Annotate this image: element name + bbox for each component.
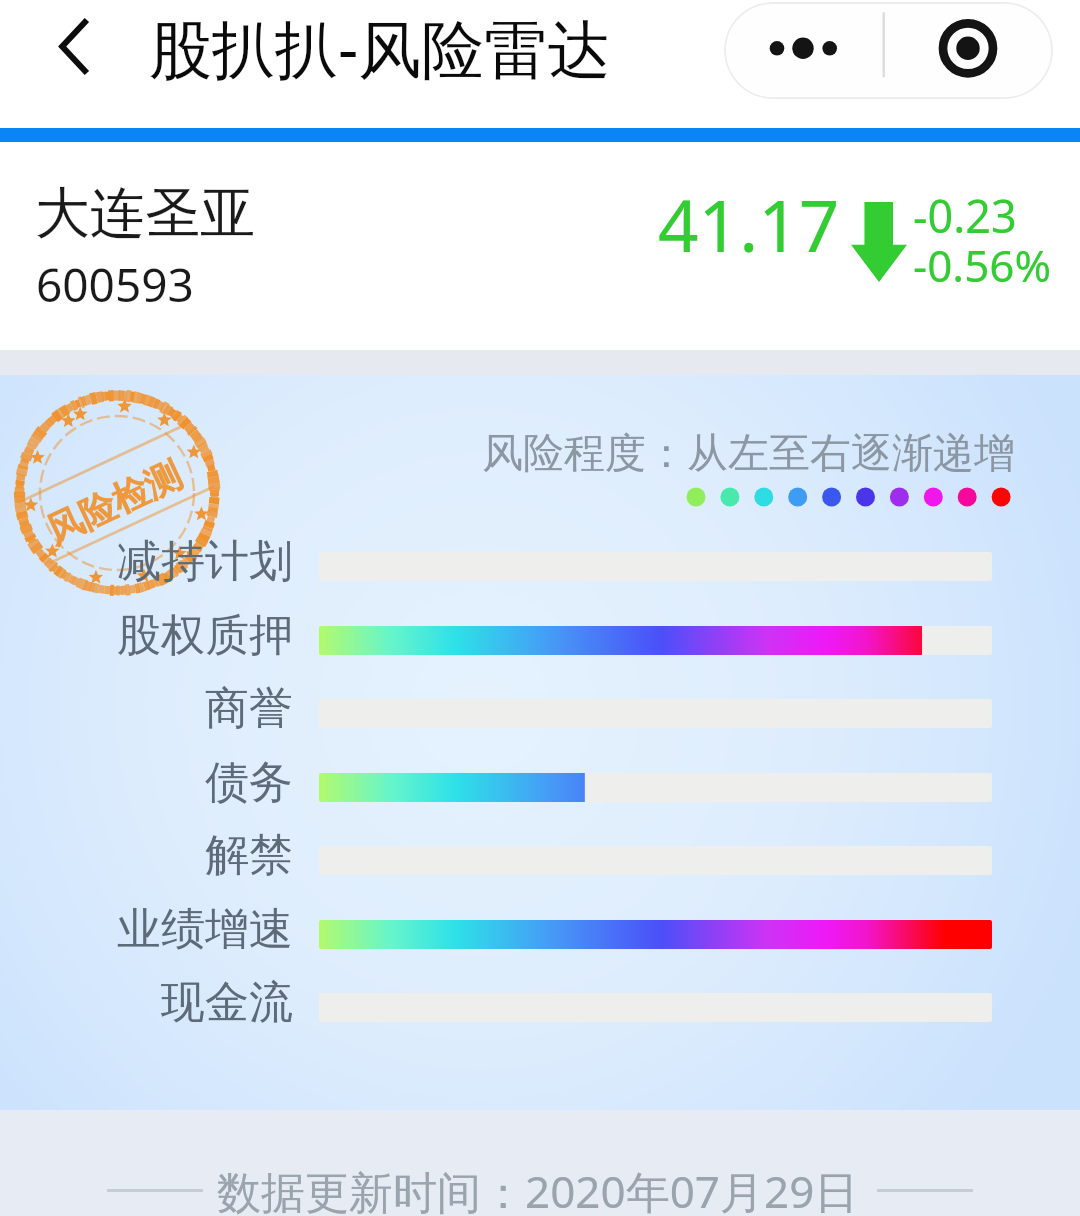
staticText: 股扒扒-风险雷达 bbox=[149, 5, 611, 91]
button[interactable]: 股权质押 bbox=[0, 601, 1080, 670]
staticText: 600593 bbox=[36, 253, 194, 316]
staticText: 风险检测 bbox=[39, 452, 189, 553]
button[interactable]: 现金流 bbox=[0, 968, 1080, 1037]
button[interactable]: More options bbox=[724, 2, 884, 99]
staticText: 债务 bbox=[205, 755, 293, 810]
staticText: 解禁 bbox=[205, 828, 293, 883]
staticText: 商誉 bbox=[205, 681, 293, 736]
staticText: 业绩增速 bbox=[117, 902, 293, 957]
staticText: -0.23 bbox=[913, 185, 1017, 246]
staticText: -0.56% bbox=[913, 235, 1052, 295]
button[interactable]: 业绩增速 bbox=[0, 895, 1080, 964]
button[interactable]: 解禁 bbox=[0, 821, 1080, 890]
button[interactable]: 债务 bbox=[0, 748, 1080, 817]
staticText: 41.17 bbox=[658, 176, 840, 273]
staticText: 现金流 bbox=[161, 975, 293, 1030]
staticText: 股权质押 bbox=[117, 608, 293, 663]
staticText: 风险程度：从左至右逐渐递增 bbox=[482, 428, 1015, 480]
button[interactable]: 商誉 bbox=[0, 674, 1080, 743]
button[interactable]: Close mini program bbox=[884, 2, 1050, 99]
staticText: 减持计划 bbox=[117, 534, 293, 589]
button[interactable]: Back bbox=[16, 14, 128, 114]
button[interactable]: 减持计划 bbox=[0, 527, 1080, 596]
staticText: 大连圣亚 bbox=[35, 179, 255, 248]
staticText: 数据更新时间：2020年07月29日 bbox=[217, 1161, 859, 1216]
